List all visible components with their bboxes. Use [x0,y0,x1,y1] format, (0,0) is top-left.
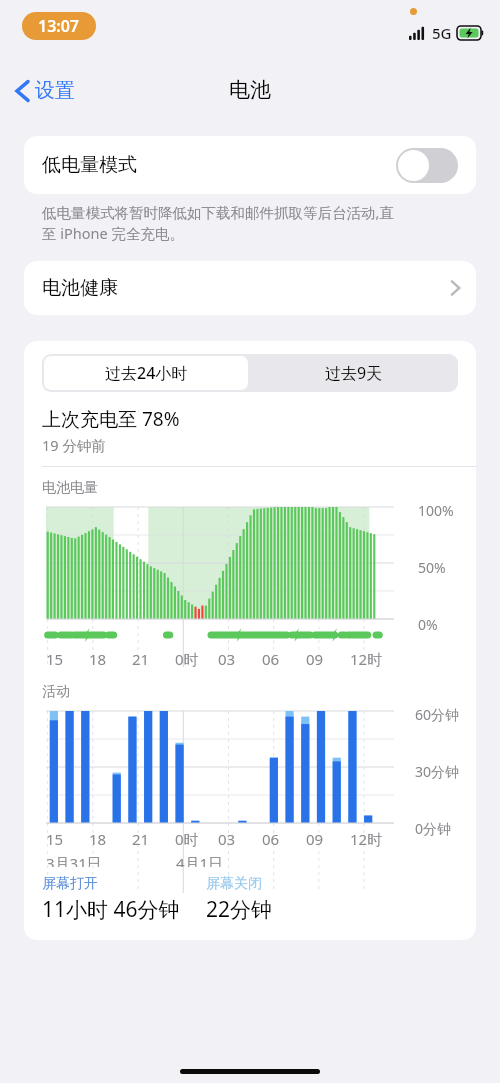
staticText: 活动 [42,683,70,701]
staticText: 09 [306,649,324,669]
staticText: 50% [418,558,446,577]
staticText: 06 [262,829,280,849]
staticText: 上次充电至 78% [42,406,180,432]
staticText: 电池电量 [42,479,98,497]
staticText: 18 [89,829,107,849]
staticText: 03 [218,649,236,669]
staticText: 0分钟 [415,819,452,838]
staticText: 屏幕关闭 [206,875,262,893]
staticText: 0时 [175,829,199,849]
button[interactable]: 过去9天 [250,354,458,392]
staticText: 09 [306,829,324,849]
button[interactable]: 过去24小时 [44,356,248,390]
staticText: 低电量模式 [42,153,396,177]
button[interactable]: 设置 [12,74,79,107]
staticText: 3月31日 [46,853,102,867]
staticText: 0时 [175,649,199,669]
staticText: 过去24小时 [105,362,188,384]
button[interactable]: 电池健康 [24,261,476,315]
staticText: 电池 [229,77,271,103]
button[interactable]: 低电量模式开关 [396,148,458,183]
staticText: 5G [432,23,452,43]
staticText: 21 [132,649,150,669]
staticText: 低电量模式将暂时降低如下载和邮件抓取等后台活动,直 至 iPhone 完全充电。 [42,202,394,243]
staticText: 设置 [35,78,75,103]
staticText: 15 [46,649,64,669]
staticText: 12时 [350,829,383,849]
staticText: 30分钟 [415,762,460,781]
staticText: 电池健康 [42,276,451,300]
staticText: 03 [218,829,236,849]
staticText: 21 [132,829,150,849]
staticText: 0% [418,615,438,634]
staticText: 06 [262,649,280,669]
staticText: 过去9天 [325,362,383,384]
staticText: 4月1日 [176,853,224,867]
staticText: 22分钟 [206,895,273,924]
staticText: 12时 [350,649,383,669]
staticText: 15 [46,829,64,849]
button[interactable]: 低电量模式 [24,136,476,194]
staticText: 19 分钟前 [42,435,106,455]
staticText: 60分钟 [415,705,460,724]
staticText: 13:07 [38,15,80,37]
staticText: 11小时 46分钟 [42,895,180,924]
staticText: 18 [89,649,107,669]
staticText: 100% [418,501,454,520]
staticText: 屏幕打开 [42,875,98,893]
